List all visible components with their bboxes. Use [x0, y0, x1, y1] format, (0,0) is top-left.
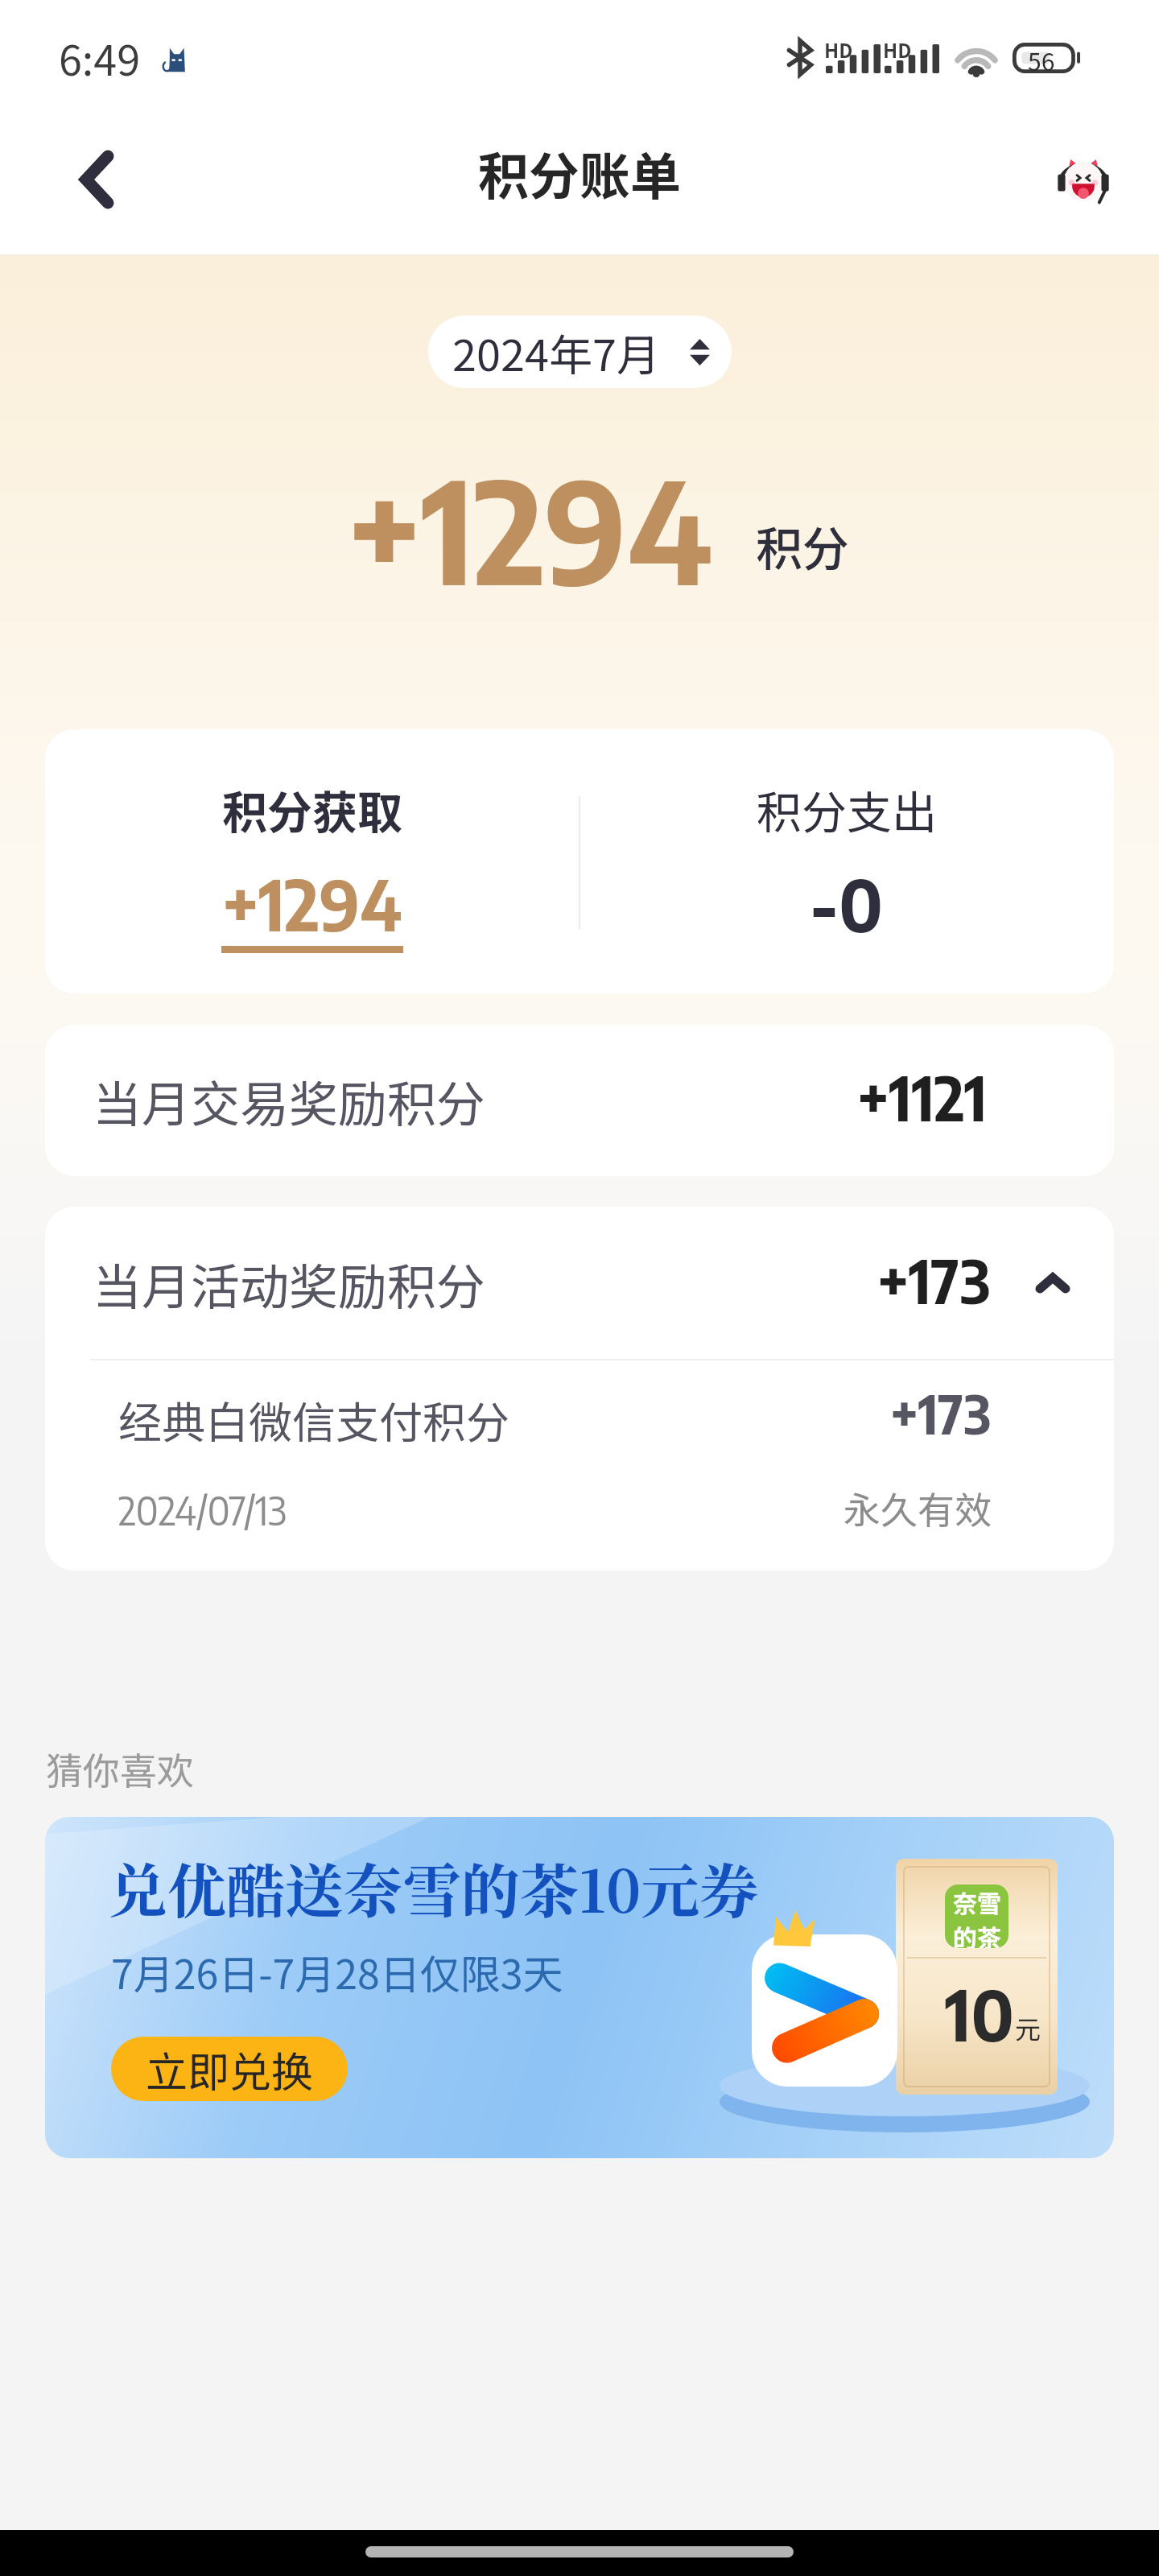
- button[interactable]: 立即兑换: [111, 2037, 348, 2101]
- staticText: 56: [1028, 43, 1055, 73]
- staticText: 7月26日-7月28日仅限3天: [111, 1942, 563, 2000]
- staticText: 2024/07/13: [118, 1486, 843, 1534]
- staticText: 2024年7月: [452, 320, 660, 383]
- staticText: 积分获取: [222, 777, 402, 842]
- staticText: +1294: [347, 440, 713, 617]
- button[interactable]: 当月活动奖励积分: [45, 1207, 1114, 1359]
- staticText: +173: [890, 1380, 992, 1446]
- staticText: 6:49: [59, 27, 141, 88]
- staticText: 当月交易奖励积分: [93, 1065, 486, 1136]
- staticText: 积分: [756, 512, 850, 580]
- staticText: +173: [877, 1243, 991, 1318]
- staticText: -0: [810, 859, 884, 947]
- staticText: 永久有效: [843, 1481, 992, 1535]
- button[interactable]: Customer service: [1048, 144, 1119, 215]
- staticText: HD: [883, 35, 912, 64]
- staticText: 兑优酷送奈雪的茶10元券: [109, 1845, 759, 1930]
- button[interactable]: 2024年7月: [428, 316, 732, 388]
- staticText: 奈雪 的茶: [953, 1885, 1001, 1948]
- staticText: +1121: [857, 1059, 988, 1135]
- staticText: +1294: [222, 860, 402, 946]
- staticText: 经典白微信支付积分: [118, 1388, 890, 1451]
- staticText: 10: [945, 1970, 1015, 2056]
- staticText: 积分账单: [478, 136, 681, 209]
- staticText: 当月活动奖励积分: [93, 1248, 877, 1319]
- staticText: 元: [1015, 2009, 1041, 2046]
- button[interactable]: Back: [61, 144, 132, 215]
- staticText: 猜你喜欢: [46, 1742, 194, 1796]
- button[interactable]: 奈雪 的茶: [45, 1817, 1114, 2158]
- staticText: 积分支出: [757, 777, 937, 842]
- staticText: 立即兑换: [146, 2039, 314, 2099]
- staticText: HD: [824, 35, 853, 64]
- button[interactable]: 当月交易奖励积分: [45, 1025, 1114, 1176]
